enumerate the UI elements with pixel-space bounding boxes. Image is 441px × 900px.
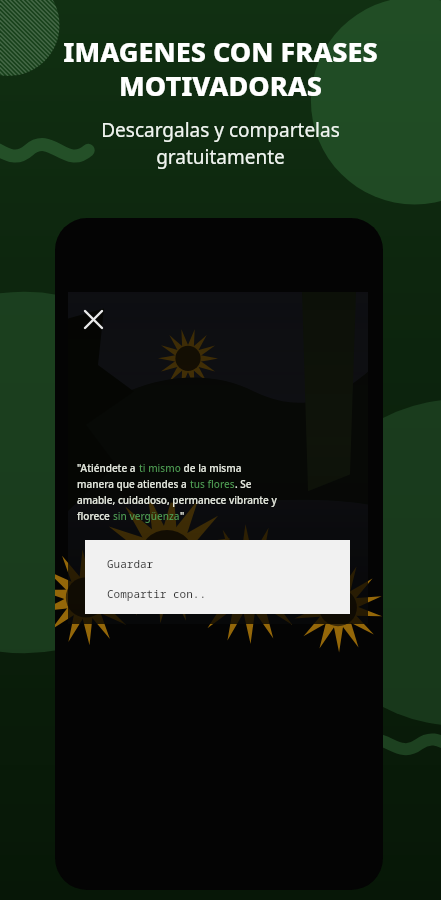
staticText: Guardar	[107, 556, 154, 571]
staticText: Compartir con..	[107, 586, 206, 601]
button[interactable]: Cerrar	[73, 299, 113, 339]
staticText: . Se	[235, 477, 252, 491]
staticText: vibrante	[229, 493, 269, 507]
staticText: tus flores	[190, 477, 235, 491]
staticText: manera que atiendes a	[77, 477, 190, 491]
button[interactable]: Guardar	[85, 551, 350, 575]
staticText: IMAGENES CON FRASES MOTIVADORAS	[63, 33, 378, 104]
staticText: "	[180, 509, 185, 523]
staticText: amable, cuidadoso, permanece	[77, 493, 229, 507]
staticText: "Atiéndete a	[77, 461, 139, 475]
staticText: y	[269, 493, 277, 507]
staticText: florece	[77, 509, 113, 523]
staticText: ti mismo	[139, 461, 181, 475]
staticText: Descargalas y compartelas gratuitamente	[101, 117, 340, 170]
staticText: sin vergüenza	[113, 509, 180, 523]
button[interactable]: Compartir con..	[85, 581, 350, 605]
staticText: de la misma	[181, 461, 242, 475]
